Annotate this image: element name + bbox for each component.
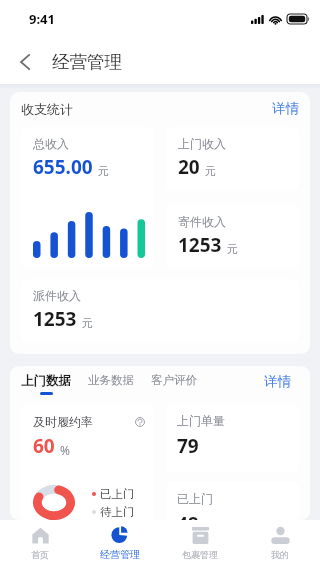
staticText: 详情	[264, 373, 291, 390]
staticText: 元	[98, 164, 109, 178]
staticText: 总收入	[33, 136, 69, 151]
staticText: 元	[205, 164, 216, 178]
staticText: 包裹管理	[182, 549, 218, 560]
staticText: 业务数据	[88, 373, 134, 387]
button[interactable]: 包裹管理	[160, 520, 240, 566]
staticText: 已上门	[100, 487, 135, 501]
button[interactable]: 经营管理	[80, 520, 160, 566]
staticText: 经营管理	[100, 548, 140, 561]
staticText: 详情	[272, 100, 299, 117]
staticText: 上门单量	[177, 413, 225, 428]
button[interactable]: 已上门	[166, 482, 299, 520]
button[interactable]: 总收入	[21, 127, 154, 267]
staticText: 1253	[33, 306, 77, 332]
button[interactable]: 上门收入	[166, 127, 299, 191]
staticText: 1253	[178, 232, 222, 258]
button[interactable]: 派件收入	[21, 279, 299, 343]
staticText: 首页	[31, 549, 49, 560]
staticText: %	[60, 442, 70, 458]
staticText: 上门收入	[178, 136, 226, 151]
staticText: 元	[227, 242, 238, 256]
staticText: 20	[178, 154, 200, 180]
staticText: 经营管理	[52, 51, 122, 73]
staticText: 9:41	[29, 10, 55, 28]
staticText: 79	[177, 433, 199, 459]
staticText: 上门数据	[21, 373, 71, 389]
staticText: 我的	[271, 549, 289, 560]
staticText: 48	[177, 511, 199, 520]
staticText: 派件收入	[33, 288, 81, 303]
button[interactable]: 客户评价	[151, 373, 197, 387]
button[interactable]: 我的	[240, 520, 320, 566]
staticText: 及时履约率	[33, 414, 93, 429]
staticText: 收支统计	[21, 101, 73, 117]
staticText: 客户评价	[151, 373, 197, 387]
button[interactable]: 及时履约率	[21, 404, 154, 520]
button[interactable]: Back	[7, 44, 43, 80]
button[interactable]: 上门单量	[166, 404, 299, 472]
button[interactable]: 业务数据	[88, 373, 134, 387]
button[interactable]: 详情	[272, 100, 299, 117]
button[interactable]: 寄件收入	[166, 205, 299, 269]
staticText: 60	[33, 433, 55, 459]
staticText: 待上门	[100, 505, 135, 519]
staticText: 655.00	[33, 154, 93, 180]
button[interactable]: 上门数据	[21, 373, 71, 395]
button[interactable]: 首页	[0, 520, 80, 566]
button[interactable]: 详情	[264, 373, 299, 390]
staticText: 元	[82, 316, 93, 330]
staticText: 寄件收入	[178, 214, 226, 229]
staticText: 已上门	[177, 491, 213, 506]
